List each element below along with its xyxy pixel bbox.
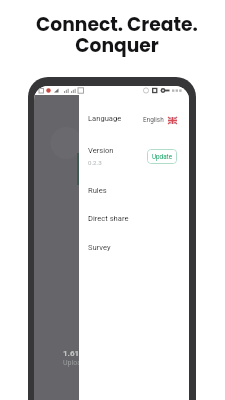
staticText: English: [143, 116, 164, 124]
staticText: Update: [152, 153, 172, 160]
staticText: Direct share: [88, 214, 129, 223]
button[interactable]: Direct share: [88, 212, 177, 225]
button[interactable]: Rules: [88, 184, 177, 197]
staticText: Connect. Create.: [36, 11, 198, 37]
staticText: Survey: [88, 243, 111, 252]
button[interactable]: Language: [88, 112, 177, 125]
staticText: 0.2.3: [88, 159, 102, 166]
staticText: Language: [88, 114, 122, 123]
other: English language: [168, 117, 177, 124]
staticText: Conquer: [75, 32, 159, 58]
button[interactable]: Update: [147, 149, 177, 164]
staticText: Uploads: [63, 359, 89, 367]
button[interactable]: Survey: [88, 241, 177, 254]
staticText: Version: [88, 146, 114, 155]
staticText: Rules: [88, 186, 107, 195]
staticText: 1.61 M: [63, 349, 89, 358]
